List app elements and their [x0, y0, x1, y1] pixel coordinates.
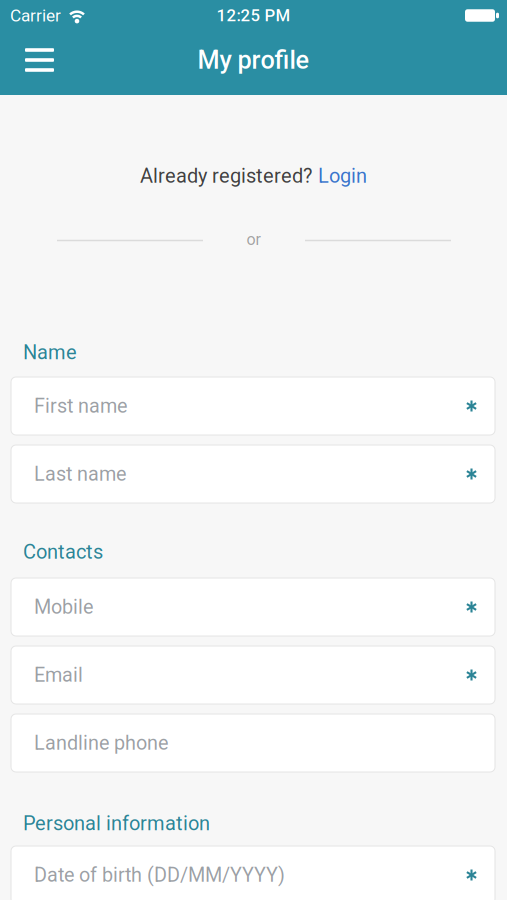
staticText: Mobile — [34, 595, 93, 619]
staticText: or — [246, 230, 260, 249]
button[interactable]: Login — [318, 164, 367, 188]
staticText: Last name — [34, 462, 126, 486]
staticText: My profile — [197, 45, 309, 75]
staticText: Contacts — [23, 540, 103, 564]
button[interactable]: Landline phone — [11, 714, 495, 772]
button[interactable]: Menu — [11, 34, 68, 86]
staticText: Personal information — [23, 812, 210, 835]
staticText: Carrier — [10, 5, 61, 26]
button[interactable]: Email — [11, 646, 495, 704]
button[interactable]: Last name — [11, 445, 495, 503]
staticText: Landline phone — [34, 731, 168, 755]
staticText: Login — [318, 164, 367, 188]
button[interactable]: First name — [11, 377, 495, 435]
staticText: 12:25 PM — [216, 6, 290, 25]
button[interactable]: Mobile — [11, 578, 495, 636]
staticText: Name — [23, 341, 77, 364]
staticText: Date of birth (DD/MM/YYYY) — [34, 863, 285, 887]
staticText: Email — [34, 663, 83, 687]
staticText: First name — [34, 394, 127, 418]
button[interactable]: Date of birth (DD/MM/YYYY) — [11, 846, 495, 900]
staticText: Already registered? — [140, 164, 312, 188]
